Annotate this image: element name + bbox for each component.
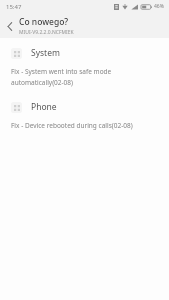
- staticText: 46%: [154, 3, 164, 10]
- staticText: Co nowego?: [19, 16, 69, 28]
- staticText: Fix - Device rebooted during calls(02-08…: [11, 121, 133, 130]
- button[interactable]: Phone: [0, 101, 169, 130]
- button[interactable]: Back: [2, 18, 18, 34]
- staticText: System: [31, 47, 60, 59]
- staticText: MIUI-V9.2.2.0.NCFMIEK: [19, 29, 74, 36]
- staticText: Phone: [31, 101, 57, 113]
- staticText: Fix - System went into safe mode automat…: [11, 67, 112, 87]
- button[interactable]: System: [0, 47, 169, 87]
- staticText: 15:47: [6, 3, 22, 11]
